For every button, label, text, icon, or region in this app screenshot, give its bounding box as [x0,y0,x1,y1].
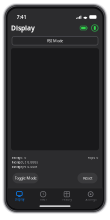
staticText: Timer [40,198,47,201]
staticText: AverageCT: 0.000s [11,161,37,164]
button[interactable]: Reset [77,173,97,183]
button[interactable]: Sensor status [90,23,99,33]
staticText: Display [15,198,24,201]
staticText: AverageJH: 0.00in [11,165,37,169]
staticText: Display [11,24,35,32]
staticText: Reset [83,175,92,181]
button[interactable]: Timer [31,190,55,203]
button[interactable]: Settings [79,190,103,203]
button[interactable]: Toggle Mode [12,173,38,183]
staticText: 7:41 [16,13,26,21]
staticText: Average: 0 [11,156,26,159]
staticText: RSI Mode [47,38,63,43]
staticText: Settings [85,198,96,201]
button[interactable]: RSI Mode [7,36,102,45]
staticText: History [62,198,71,201]
staticText: Reps: 0 [87,156,98,159]
button[interactable]: Display [7,190,31,203]
button[interactable]: Device battery [79,23,89,33]
button[interactable]: History [55,190,79,203]
staticText: Toggle Mode [14,175,36,181]
